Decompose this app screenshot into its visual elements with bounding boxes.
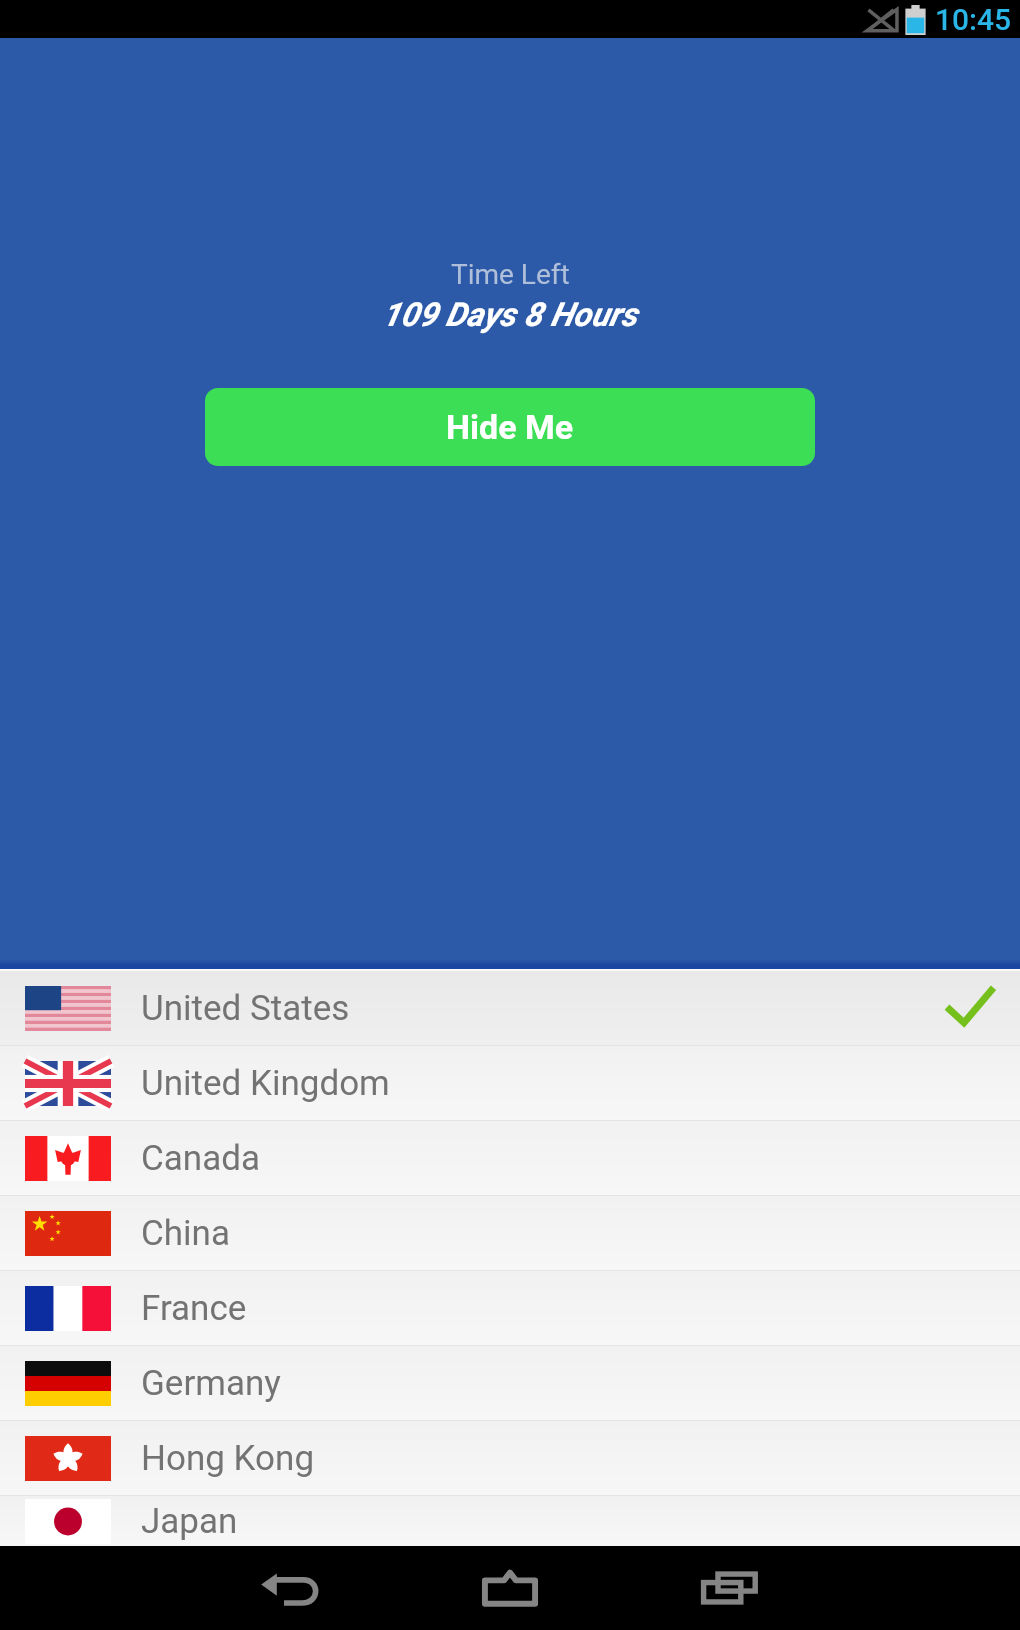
button[interactable]: Canada: [0, 1121, 1020, 1195]
button[interactable]: Home: [400, 1546, 620, 1630]
staticText: Hong Kong: [141, 1438, 315, 1479]
button[interactable]: China: [0, 1196, 1020, 1270]
staticText: Hide Me: [446, 407, 574, 447]
staticText: Canada: [141, 1138, 260, 1179]
staticText: 109 Days 8 Hours: [382, 295, 638, 334]
staticText: Germany: [141, 1363, 281, 1404]
button[interactable]: Back: [180, 1546, 400, 1630]
button[interactable]: United States: [0, 971, 1020, 1045]
staticText: Time Left: [451, 258, 570, 291]
button[interactable]: Germany: [0, 1346, 1020, 1420]
button[interactable]: United Kingdom: [0, 1046, 1020, 1120]
staticText: United States: [141, 988, 350, 1029]
button[interactable]: Hide Me: [205, 388, 815, 466]
button[interactable]: Japan: [0, 1496, 1020, 1546]
staticText: 10:45: [935, 2, 1012, 37]
staticText: United Kingdom: [141, 1063, 390, 1104]
button[interactable]: Recents: [620, 1546, 840, 1630]
staticText: China: [141, 1213, 230, 1254]
button[interactable]: Hong Kong: [0, 1421, 1020, 1495]
staticText: Japan: [141, 1501, 238, 1542]
button[interactable]: France: [0, 1271, 1020, 1345]
staticText: France: [141, 1288, 247, 1329]
